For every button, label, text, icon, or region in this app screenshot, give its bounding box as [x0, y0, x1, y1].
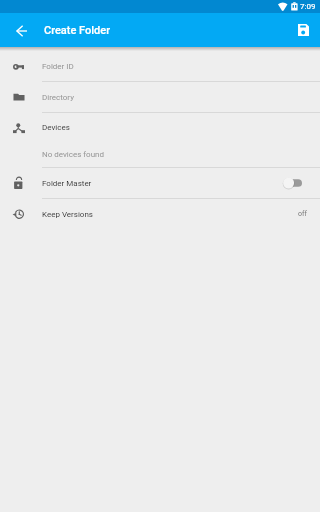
staticText: Devices: [42, 123, 70, 132]
staticText: No devices found: [42, 150, 105, 159]
staticText: Keep Versions: [42, 210, 93, 219]
staticText: off: [298, 210, 307, 218]
staticText: 7:09: [300, 2, 316, 11]
button[interactable]: Save: [287, 14, 319, 46]
staticText: Directory: [42, 93, 74, 102]
staticText: Folder Master: [42, 179, 92, 188]
button[interactable]: Keep Versions: [0, 199, 320, 229]
button[interactable]: Directory: [0, 82, 320, 113]
button[interactable]: Folder ID: [0, 51, 320, 82]
staticText: Create Folder: [44, 24, 111, 37]
staticText: Folder ID: [42, 62, 74, 71]
button[interactable]: Navigate up: [5, 15, 37, 47]
button[interactable]: Devices: [0, 113, 320, 168]
button[interactable]: Folder Master: [0, 168, 320, 199]
